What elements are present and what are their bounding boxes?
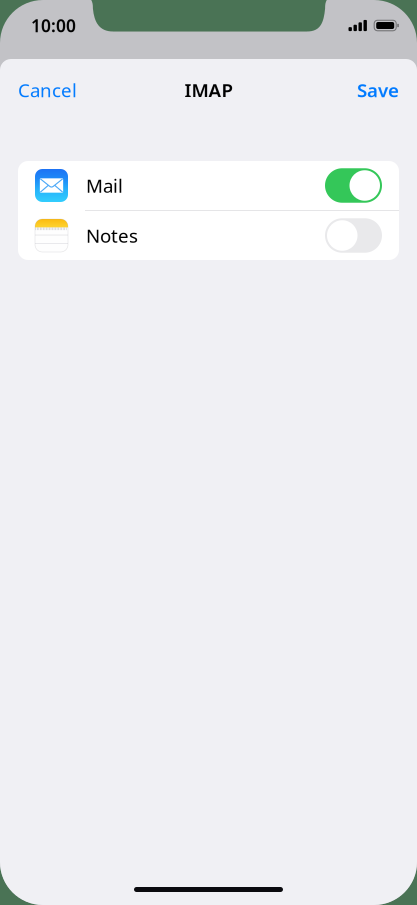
staticText: Save <box>357 78 399 102</box>
staticText: IMAP <box>184 78 232 102</box>
staticText: Notes <box>86 223 138 248</box>
staticText: Mail <box>86 173 123 198</box>
button[interactable]: Mail <box>18 161 399 210</box>
button[interactable]: Save <box>347 70 399 110</box>
staticText: Cancel <box>18 78 77 102</box>
staticText: 10:00 <box>31 14 76 37</box>
button[interactable]: Notes <box>18 211 399 260</box>
button[interactable]: Cancel <box>18 70 87 110</box>
